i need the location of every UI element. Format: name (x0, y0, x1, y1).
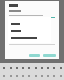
button[interactable]: Key (58, 73, 63, 78)
button[interactable]: Key (33, 73, 38, 78)
button[interactable]: Key (39, 65, 44, 70)
button[interactable]: Key (8, 73, 13, 78)
button[interactable]: Key (1, 65, 6, 70)
button[interactable]: Key (45, 65, 50, 70)
button[interactable]: Key (14, 65, 19, 70)
button[interactable]: Cancel (29, 54, 40, 57)
button[interactable]: Key (8, 65, 13, 70)
button[interactable]: Key (26, 65, 31, 70)
button[interactable]: Key (39, 73, 44, 78)
button[interactable]: Ninguno (8, 20, 51, 27)
button[interactable]: Key (20, 65, 25, 70)
button[interactable]: Key (1, 73, 6, 78)
button[interactable]: Manual (8, 27, 51, 34)
button[interactable]: Key (20, 73, 25, 78)
button[interactable]: Key (45, 73, 50, 78)
button[interactable]: Key (26, 73, 31, 78)
button[interactable]: Key (51, 73, 56, 78)
button[interactable]: Key (51, 65, 56, 70)
button[interactable]: Key (58, 65, 63, 70)
button[interactable]: Configuracion automatica de proxy (8, 34, 51, 41)
button[interactable]: Key (14, 73, 19, 78)
button[interactable]: Save (43, 54, 56, 57)
button[interactable]: Key (33, 65, 38, 70)
